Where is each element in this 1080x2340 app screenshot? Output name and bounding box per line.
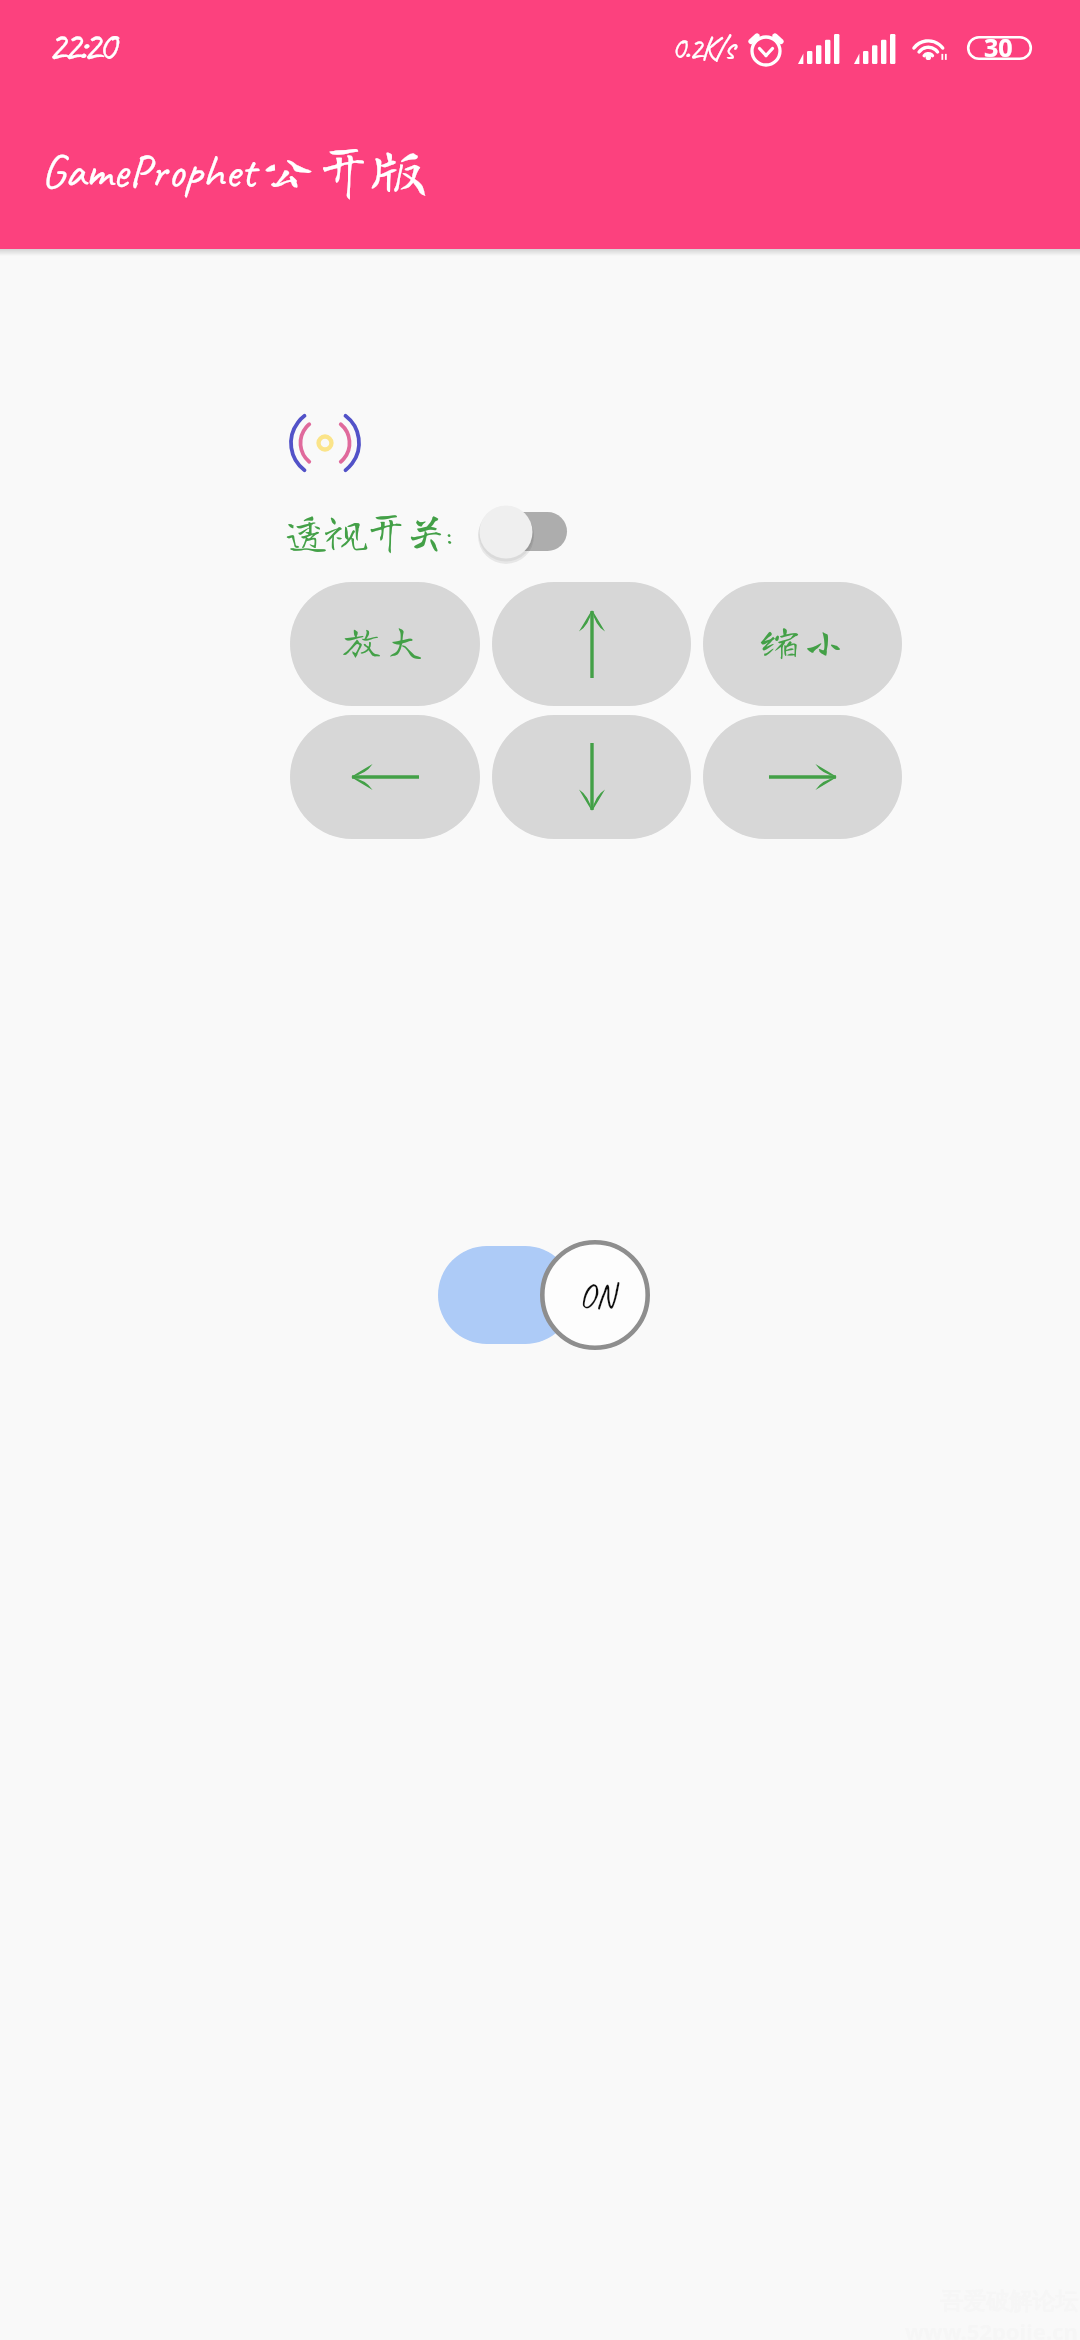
staticText: 30 [984, 30, 1013, 64]
button[interactable]: 放大 [290, 582, 480, 706]
button[interactable]: 向下 [492, 715, 691, 839]
button[interactable]: ON [438, 1240, 653, 1355]
button[interactable]: 缩小 [703, 582, 902, 706]
button[interactable]: 透视开关 [474, 503, 574, 563]
staticText: 透视开关: [285, 509, 449, 552]
staticText: ON [579, 1275, 616, 1317]
staticText: 公开版 [260, 141, 425, 198]
staticText: GameProphet [41, 141, 256, 201]
staticText: 22:20 [47, 18, 113, 73]
staticText: 0.2K/s [671, 27, 733, 69]
staticText: 缩小 [759, 620, 847, 661]
button[interactable]: 向上 [492, 582, 691, 706]
staticText: 放大 [341, 620, 429, 661]
button[interactable]: 向右 [703, 715, 902, 839]
button[interactable]: 向左 [290, 715, 480, 839]
